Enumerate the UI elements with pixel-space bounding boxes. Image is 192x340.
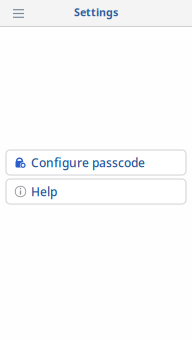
staticText: Settings: [74, 5, 118, 19]
button[interactable]: Configure passcode: [6, 150, 186, 175]
staticText: Help: [31, 183, 57, 199]
button[interactable]: Menu: [5, 1, 32, 26]
button[interactable]: Help: [6, 179, 186, 204]
staticText: Configure passcode: [31, 154, 145, 170]
